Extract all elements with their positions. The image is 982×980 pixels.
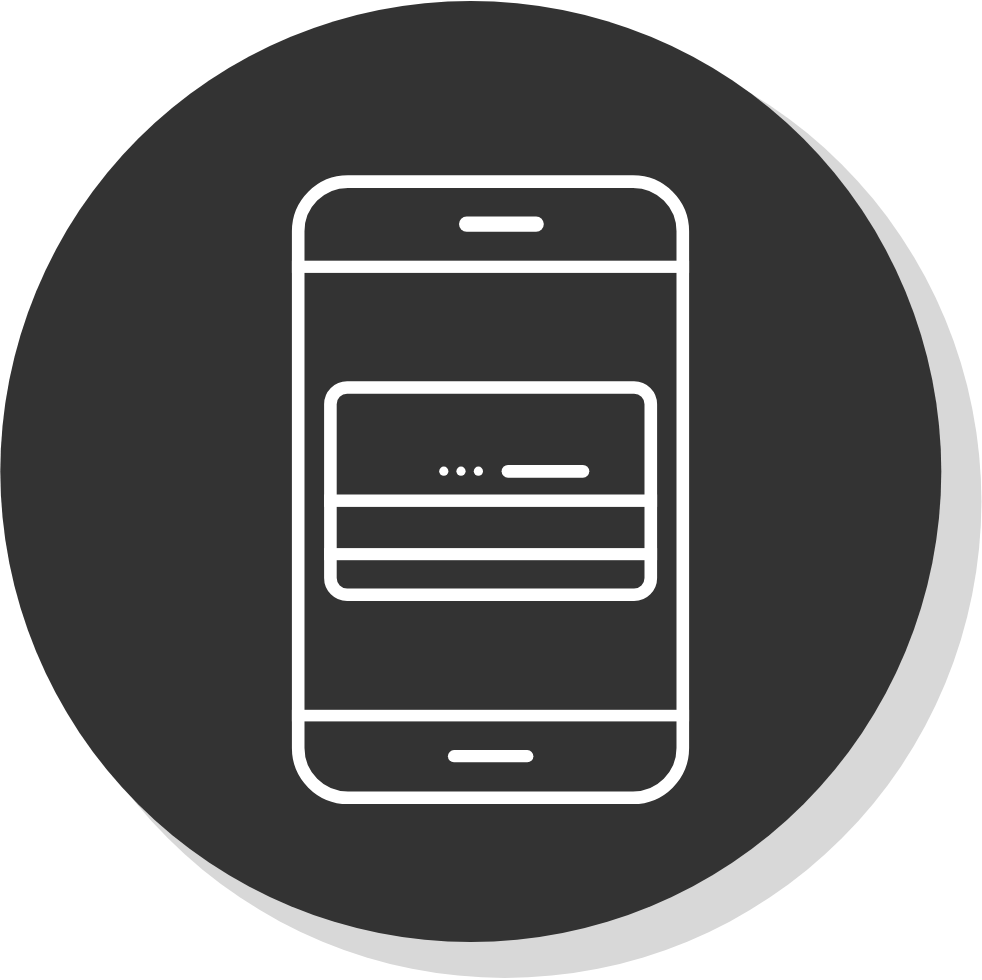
- button[interactable]: Mobile payment — pay by card on your pho…: [0, 0, 982, 980]
